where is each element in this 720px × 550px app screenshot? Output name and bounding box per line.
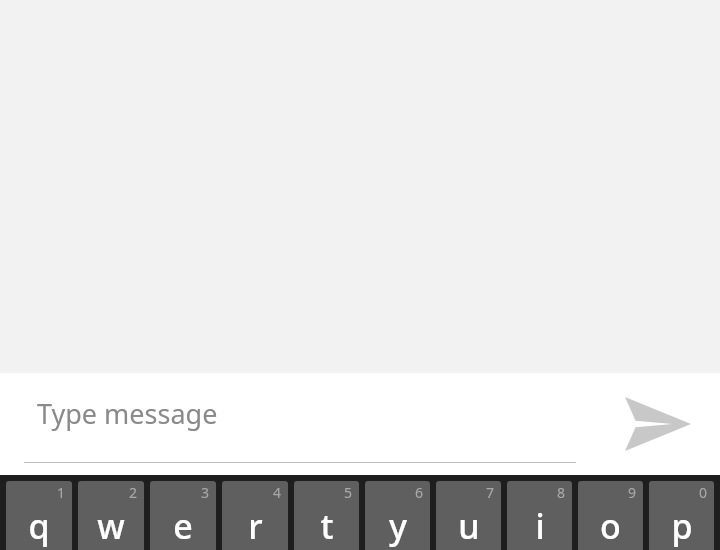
staticText: u bbox=[458, 503, 480, 549]
staticText: o bbox=[600, 503, 621, 549]
button[interactable]: Type message bbox=[0, 373, 600, 475]
staticText: 5 bbox=[344, 483, 353, 502]
button[interactable]: 0 bbox=[649, 481, 714, 550]
staticText: 4 bbox=[273, 483, 282, 502]
staticText: 3 bbox=[201, 483, 210, 502]
button[interactable]: 8 bbox=[507, 481, 572, 550]
button[interactable]: 3 bbox=[150, 481, 216, 550]
button[interactable]: 4 bbox=[222, 481, 288, 550]
staticText: 8 bbox=[557, 483, 566, 502]
staticText: i bbox=[535, 503, 545, 549]
staticText: e bbox=[173, 503, 193, 549]
staticText: 9 bbox=[628, 483, 637, 502]
button[interactable]: 7 bbox=[436, 481, 501, 550]
staticText: 1 bbox=[57, 483, 66, 502]
button[interactable]: 1 bbox=[6, 481, 72, 550]
staticText: 6 bbox=[415, 483, 424, 502]
button[interactable]: 2 bbox=[78, 481, 144, 550]
staticText: p bbox=[671, 503, 693, 549]
button[interactable]: 6 bbox=[365, 481, 430, 550]
staticText: t bbox=[320, 503, 334, 549]
staticText: 2 bbox=[129, 483, 138, 502]
staticText: y bbox=[389, 503, 407, 549]
staticText: r bbox=[248, 503, 263, 549]
staticText: w bbox=[97, 503, 125, 549]
staticText: 0 bbox=[699, 483, 708, 502]
staticText: q bbox=[28, 503, 50, 549]
staticText: Type message bbox=[37, 395, 218, 432]
staticText: 7 bbox=[486, 483, 495, 502]
button[interactable]: Send bbox=[610, 387, 706, 461]
button[interactable]: 9 bbox=[578, 481, 643, 550]
button[interactable]: 5 bbox=[294, 481, 359, 550]
